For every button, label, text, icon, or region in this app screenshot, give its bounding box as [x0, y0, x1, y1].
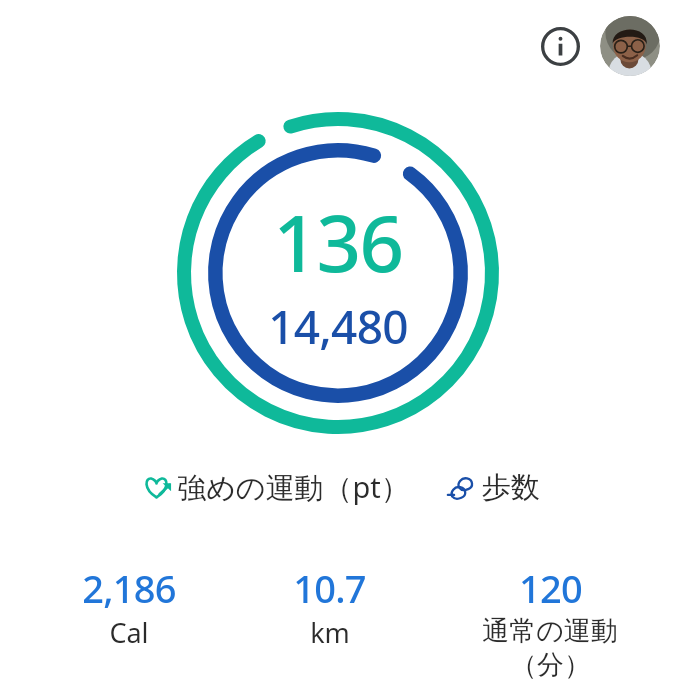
staticText: 120	[519, 562, 582, 614]
button[interactable]: Profile	[600, 16, 660, 76]
staticText: km	[310, 614, 350, 651]
button[interactable]: 2,186	[78, 562, 180, 651]
staticText: 136	[273, 189, 403, 295]
button[interactable]: 10.7	[289, 562, 370, 651]
button[interactable]: 強めの運動（pt）	[138, 465, 413, 509]
staticText: 歩数	[482, 469, 540, 506]
button[interactable]: 歩数	[443, 467, 543, 508]
staticText: Cal	[109, 614, 149, 651]
staticText: 強めの運動（pt）	[177, 467, 410, 507]
button[interactable]: Information	[532, 18, 588, 74]
staticText: 2,186	[82, 562, 176, 614]
staticText: （分）	[510, 648, 591, 680]
button[interactable]: 120	[478, 562, 622, 680]
staticText: 14,480	[268, 295, 408, 358]
staticText: 通常の運動	[482, 614, 618, 648]
staticText: 10.7	[293, 562, 366, 614]
